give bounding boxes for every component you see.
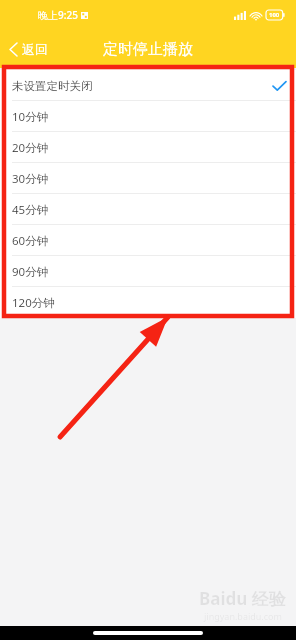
staticText: 晚上9:25	[38, 8, 78, 22]
staticText: 45分钟	[12, 202, 49, 218]
staticText: jingyan.baidu.com	[204, 610, 282, 622]
button[interactable]: 60分钟	[0, 225, 296, 256]
staticText: Baidu 经验	[199, 587, 286, 610]
other: Home indicator	[93, 631, 203, 635]
button[interactable]: 20分钟	[0, 132, 296, 163]
button[interactable]: 120分钟	[0, 287, 296, 318]
staticText: 未设置定时关闭	[12, 79, 93, 93]
button[interactable]: 45分钟	[0, 194, 296, 225]
button[interactable]: 30分钟	[0, 163, 296, 194]
staticText: 60分钟	[12, 233, 49, 249]
staticText: 返回	[22, 41, 48, 57]
button[interactable]: 90分钟	[0, 256, 296, 287]
staticText: 120分钟	[12, 295, 55, 311]
staticText: 100	[269, 11, 280, 19]
staticText: 10分钟	[12, 109, 49, 125]
button[interactable]: 10分钟	[0, 101, 296, 132]
staticText: 30分钟	[12, 171, 49, 187]
staticText: 20分钟	[12, 140, 49, 156]
staticText: 定时停止播放	[103, 40, 193, 59]
button[interactable]: 未设置定时关闭	[0, 70, 296, 101]
staticText: 90分钟	[12, 264, 49, 280]
button[interactable]: 返回	[0, 35, 58, 63]
